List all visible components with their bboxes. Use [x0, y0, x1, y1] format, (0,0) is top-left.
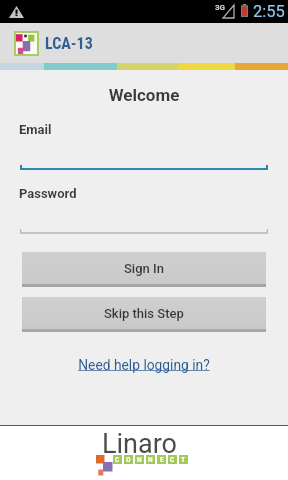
staticText: 3G: [215, 3, 226, 12]
staticText: Password: [19, 186, 77, 201]
staticText: C: [170, 456, 175, 464]
staticText: N: [137, 456, 142, 464]
staticText: Sign In: [124, 261, 164, 276]
button[interactable]: Need help logging in?: [0, 357, 288, 373]
staticText: C: [115, 456, 120, 464]
staticText: Linaro: [102, 428, 177, 460]
button[interactable]: Sign In: [22, 252, 266, 287]
staticText: T: [181, 456, 186, 464]
staticText: N: [148, 456, 153, 464]
staticText: 2:55: [253, 2, 285, 21]
staticText: O: [126, 456, 131, 464]
staticText: E: [160, 456, 164, 464]
staticText: LCA-13: [45, 34, 93, 53]
button[interactable]: Skip this Step: [22, 297, 266, 332]
staticText: Skip this Step: [104, 306, 184, 321]
staticText: Welcome: [0, 85, 288, 105]
staticText: Email: [19, 122, 52, 137]
